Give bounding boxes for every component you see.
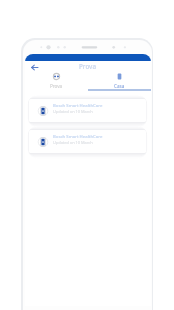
button[interactable]: Bosch Smart HealthCare <box>29 99 146 122</box>
button[interactable]: Bosch Smart HealthCare <box>29 130 146 153</box>
staticText: Bosch Smart HealthCare <box>53 133 103 139</box>
staticText: Casa <box>114 83 125 89</box>
staticText: Updated on 10 March <box>53 140 93 145</box>
staticText: Bosch Smart HealthCare <box>53 102 103 108</box>
staticText: Updated on 10 March <box>53 109 93 114</box>
button[interactable]: Prova <box>25 71 88 89</box>
staticText: Prova <box>79 62 97 71</box>
button[interactable]: Back <box>31 65 38 70</box>
staticText: Prova <box>50 83 63 89</box>
button[interactable]: Casa <box>88 71 151 89</box>
